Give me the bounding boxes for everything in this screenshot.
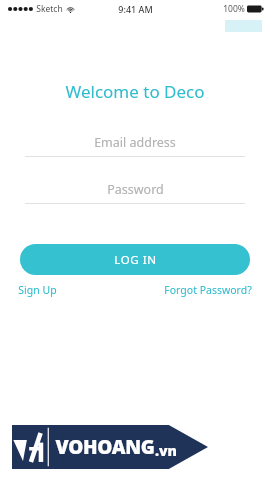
staticText: .vn (155, 441, 177, 460)
staticText: Forgot Password? (164, 283, 252, 297)
button[interactable]: LOG IN (20, 244, 250, 275)
button[interactable]: Forgot Password? (164, 280, 252, 300)
staticText: LOG IN (114, 252, 157, 268)
staticText: Email address (94, 134, 176, 151)
staticText: Sketch (36, 3, 63, 15)
staticText: Sign Up (18, 283, 57, 297)
button[interactable]: Sign Up (18, 280, 57, 300)
button[interactable]: Password (25, 179, 245, 204)
button[interactable]: Email address (25, 132, 245, 157)
staticText: 9:41 AM (118, 3, 153, 15)
staticText: Welcome to Deco (65, 80, 205, 103)
staticText: VOHOANG (55, 434, 155, 460)
staticText: 100% (223, 3, 245, 15)
staticText: Password (107, 181, 164, 198)
